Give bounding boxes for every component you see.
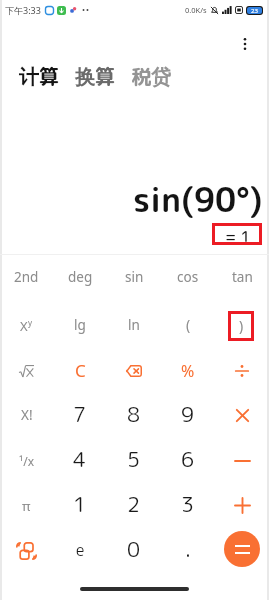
button[interactable]: Convert units bbox=[0, 528, 53, 573]
staticText: π bbox=[22, 497, 31, 515]
button[interactable]: Equals bbox=[224, 531, 260, 567]
button[interactable]: . bbox=[161, 528, 215, 573]
staticText: 4 bbox=[73, 444, 87, 473]
button[interactable]: 5 bbox=[107, 438, 161, 483]
staticText: 2nd bbox=[14, 268, 39, 286]
other: Square root bbox=[19, 365, 34, 377]
button[interactable]: Square root bbox=[0, 348, 53, 393]
button[interactable]: Divide bbox=[215, 348, 269, 393]
button[interactable]: e bbox=[53, 528, 107, 573]
button[interactable]: 0 bbox=[107, 528, 161, 573]
staticText: 2 bbox=[127, 489, 141, 518]
staticText: tan bbox=[232, 268, 253, 286]
button[interactable]: cos bbox=[161, 258, 215, 303]
button[interactable]: 3 bbox=[161, 483, 215, 528]
button[interactable]: 换算 bbox=[73, 60, 117, 92]
staticText: 换算 bbox=[75, 62, 115, 90]
button[interactable]: % bbox=[161, 348, 215, 393]
staticText: 税贷 bbox=[131, 62, 171, 90]
button[interactable]: 9 bbox=[161, 393, 215, 438]
button[interactable]: Multiply bbox=[215, 393, 269, 438]
other: Delete bbox=[126, 365, 142, 377]
button[interactable]: 2 bbox=[107, 483, 161, 528]
staticText: X! bbox=[21, 406, 33, 424]
staticText: ( bbox=[186, 315, 191, 334]
button[interactable]: ( bbox=[161, 303, 215, 348]
button[interactable]: Equals bbox=[215, 528, 269, 573]
staticText: 5 bbox=[127, 444, 141, 473]
staticText: 8 bbox=[127, 399, 141, 428]
staticText: . bbox=[185, 534, 191, 563]
other: Multiply bbox=[235, 408, 250, 423]
other: Divide bbox=[235, 364, 249, 378]
button[interactable]: More options bbox=[232, 31, 258, 57]
staticText: ) bbox=[240, 315, 245, 334]
staticText: 计算 bbox=[19, 62, 59, 90]
button[interactable]: lg bbox=[53, 303, 107, 348]
staticText: 9 bbox=[181, 399, 195, 428]
button[interactable]: C bbox=[53, 348, 107, 393]
button[interactable]: 8 bbox=[107, 393, 161, 438]
button[interactable]: ) bbox=[215, 303, 269, 348]
button[interactable]: 1 bbox=[53, 483, 107, 528]
staticText: 下午3:33 bbox=[5, 4, 41, 16]
staticText: 0 bbox=[127, 534, 141, 563]
staticText: y bbox=[28, 317, 33, 328]
staticText: ¹/x bbox=[19, 453, 35, 469]
button[interactable]: 4 bbox=[53, 438, 107, 483]
button[interactable]: π bbox=[0, 483, 53, 528]
button[interactable]: 计算 bbox=[17, 60, 61, 92]
button[interactable]: 6 bbox=[161, 438, 215, 483]
button[interactable]: sin bbox=[107, 258, 161, 303]
staticText: C bbox=[75, 359, 86, 382]
staticText: 6 bbox=[181, 444, 195, 473]
other: Plus bbox=[235, 498, 250, 513]
button[interactable]: 税贷 bbox=[129, 60, 173, 92]
button[interactable]: ¹/x bbox=[0, 438, 53, 483]
other: Convert units bbox=[16, 542, 37, 560]
button[interactable]: Minus bbox=[215, 438, 269, 483]
staticText: sin(90°) bbox=[133, 177, 263, 223]
staticText: 23 bbox=[251, 7, 258, 14]
staticText: sin bbox=[125, 268, 144, 286]
button[interactable]: deg bbox=[53, 258, 107, 303]
staticText: 3 bbox=[181, 489, 195, 518]
button[interactable]: Delete bbox=[107, 348, 161, 393]
staticText: deg bbox=[68, 268, 93, 286]
staticText: lg bbox=[74, 316, 86, 334]
staticText: = 1 bbox=[225, 226, 250, 242]
staticText: ln bbox=[128, 316, 140, 334]
staticText: X bbox=[20, 317, 28, 335]
staticText: 0.0K/s bbox=[185, 5, 207, 15]
staticText: ) bbox=[239, 316, 244, 335]
other: Minus bbox=[235, 459, 250, 463]
button[interactable]: X! bbox=[0, 393, 53, 438]
staticText: cos bbox=[177, 268, 199, 286]
button[interactable]: X bbox=[0, 303, 53, 348]
button[interactable]: tan bbox=[215, 258, 269, 303]
staticText: 7 bbox=[73, 399, 87, 428]
button[interactable]: 2nd bbox=[0, 258, 53, 303]
staticText: 1 bbox=[73, 489, 87, 518]
button[interactable]: Plus bbox=[215, 483, 269, 528]
staticText: % bbox=[181, 360, 195, 382]
button[interactable]: ln bbox=[107, 303, 161, 348]
button[interactable]: 7 bbox=[53, 393, 107, 438]
staticText: e bbox=[76, 539, 85, 561]
